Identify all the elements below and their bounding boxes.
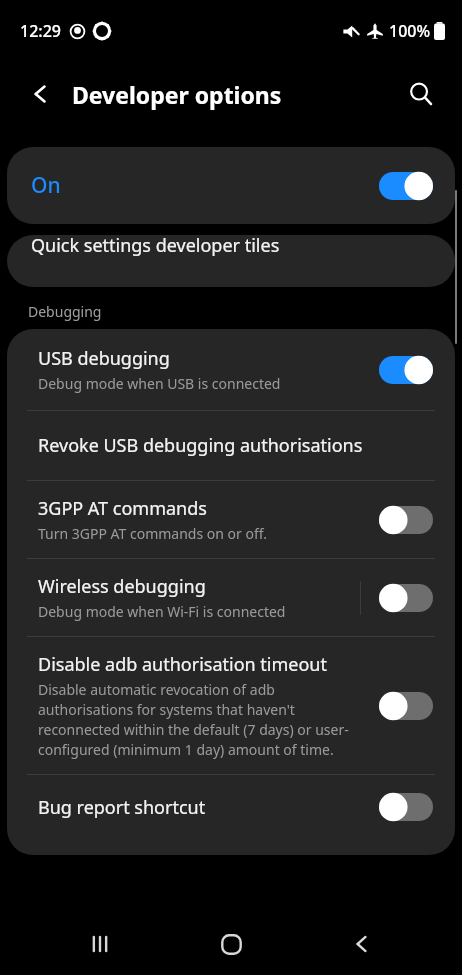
staticText: 3GPP AT commands — [38, 496, 207, 521]
button[interactable]: Home — [200, 913, 262, 975]
button[interactable]: USB debugging — [375, 352, 437, 388]
button[interactable]: 3GPP AT commands — [7, 481, 455, 558]
staticText: On — [31, 171, 61, 200]
button[interactable]: Wireless debugging — [7, 559, 455, 636]
staticText: Disable adb authorisation timeout — [38, 652, 327, 677]
button[interactable] — [7, 235, 455, 287]
staticText: 12:29 — [20, 20, 61, 42]
button[interactable]: Wireless debugging — [375, 580, 437, 616]
button[interactable]: Back — [22, 75, 60, 113]
button[interactable]: 3GPP AT commands — [375, 502, 437, 538]
button[interactable]: Revoke USB debugging authorisations — [7, 411, 455, 480]
button[interactable]: Developer options on — [379, 172, 433, 200]
staticText: Debug mode when USB is connected — [38, 374, 281, 393]
button[interactable]: On — [7, 147, 455, 224]
staticText: 100% — [389, 20, 431, 42]
button[interactable]: Disable adb authorisation timeout — [7, 637, 455, 774]
staticText: USB debugging — [38, 346, 170, 371]
staticText: Bug report shortcut — [38, 795, 206, 820]
staticText: Developer options — [72, 79, 282, 110]
button[interactable]: Back — [331, 913, 393, 975]
staticText: Revoke USB debugging authorisations — [38, 433, 363, 458]
button[interactable]: Search — [400, 73, 442, 115]
button[interactable]: Bug report shortcut — [375, 789, 437, 825]
staticText: Debug mode when Wi-Fi is connected — [38, 602, 286, 621]
button[interactable]: Bug report shortcut — [7, 775, 455, 855]
button[interactable]: Disable adb authorisation timeout — [375, 688, 437, 724]
staticText: Debugging — [28, 302, 102, 321]
staticText: Turn 3GPP AT commands on or off. — [38, 524, 268, 543]
staticText: Wireless debugging — [38, 574, 206, 599]
button[interactable]: Recent apps — [69, 913, 131, 975]
button[interactable]: USB debugging — [7, 329, 455, 410]
staticText: Quick settings developer tiles — [31, 233, 280, 258]
staticText: Disable automatic revocation of adb auth… — [38, 680, 361, 759]
